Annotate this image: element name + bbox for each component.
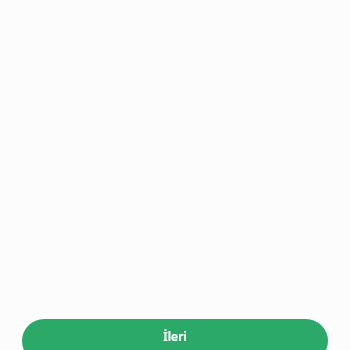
staticText: İleri [163,328,187,344]
button[interactable]: İleri [22,319,328,350]
